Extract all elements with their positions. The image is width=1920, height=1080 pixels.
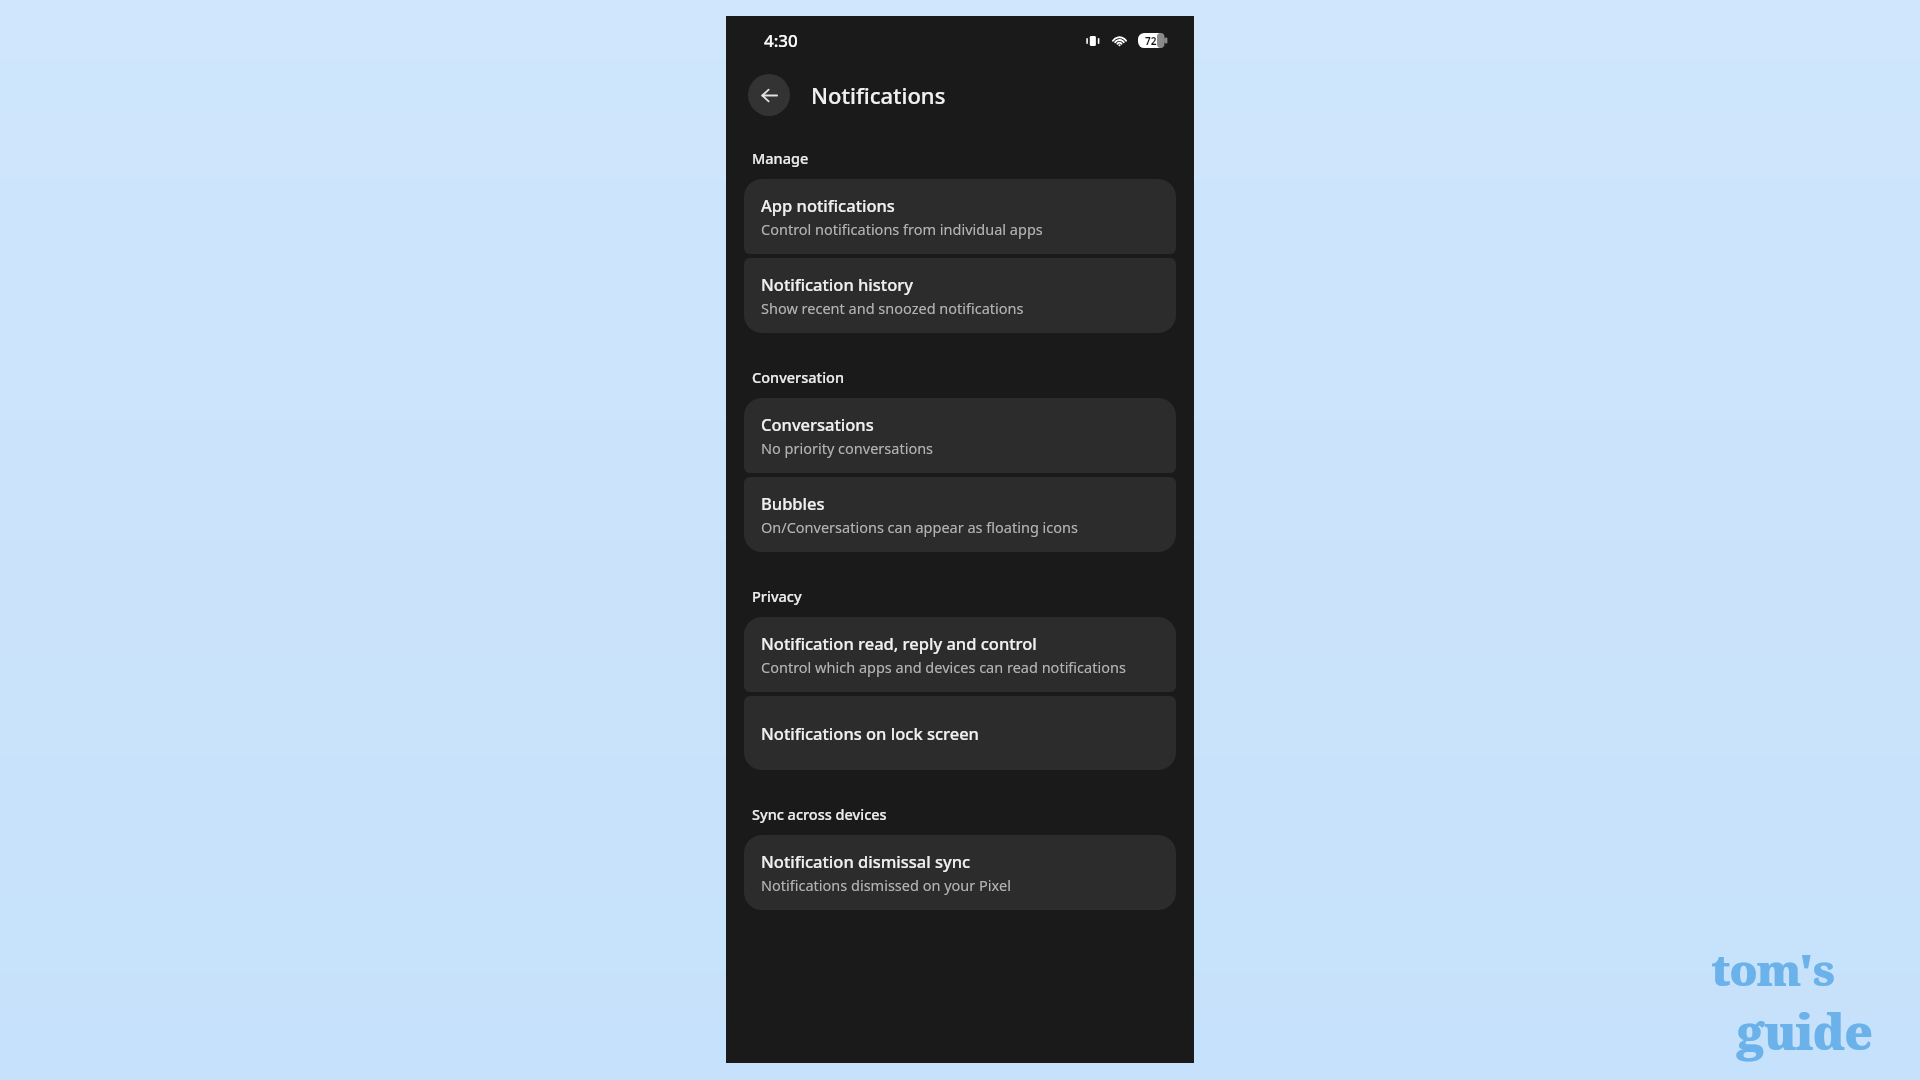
staticText: Conversation (752, 367, 845, 387)
button[interactable]: Conversations (744, 398, 1176, 473)
staticText: On/Conversations can appear as floating … (761, 517, 1078, 537)
button[interactable]: Notification history (744, 258, 1176, 333)
staticText: Conversations (761, 413, 874, 435)
button[interactable]: Notification dismissal sync (744, 835, 1176, 910)
staticText: Control notifications from individual ap… (761, 219, 1043, 239)
staticText: Notifications on lock screen (761, 722, 979, 744)
staticText: Notification read, reply and control (761, 632, 1037, 654)
staticText: tom's (1711, 939, 1834, 999)
staticText: Notification history (761, 273, 913, 295)
staticText: Show recent and snoozed notifications (761, 298, 1024, 318)
staticText: Manage (752, 148, 809, 168)
staticText: App notifications (761, 194, 895, 216)
staticText: Notifications dismissed on your Pixel (761, 875, 1011, 895)
staticText: 72 (1145, 34, 1157, 48)
button[interactable]: Notifications on lock screen (744, 696, 1176, 770)
button[interactable]: Notification read, reply and control (744, 617, 1176, 692)
staticText: Notifications (811, 80, 946, 110)
button[interactable]: Back (748, 74, 790, 116)
button[interactable]: App notifications (744, 179, 1176, 254)
staticText: Sync across devices (752, 804, 887, 824)
staticText: Bubbles (761, 492, 825, 514)
staticText: 4:30 (764, 29, 798, 52)
staticText: guide (1737, 999, 1872, 1064)
staticText: Control which apps and devices can read … (761, 657, 1126, 677)
staticText: No priority conversations (761, 438, 934, 458)
button[interactable]: Bubbles (744, 477, 1176, 552)
staticText: Privacy (752, 586, 802, 606)
staticText: Notification dismissal sync (761, 850, 971, 872)
